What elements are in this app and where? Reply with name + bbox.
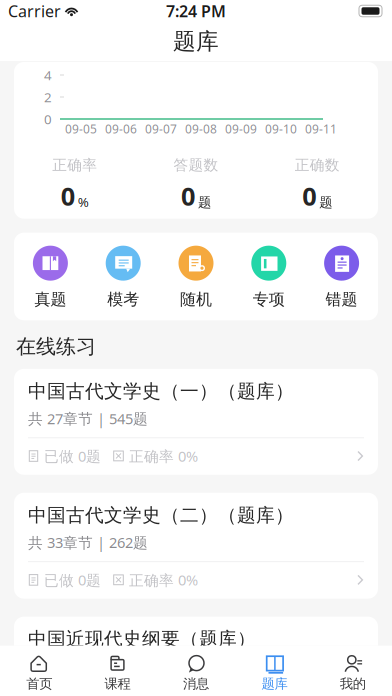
staticText: 2 <box>44 88 52 106</box>
staticText: 真题 <box>34 290 66 309</box>
staticText: 共 33章节 | 262题 <box>28 533 148 552</box>
staticText: 题库 <box>261 676 287 692</box>
staticText: 正确数 <box>295 156 340 174</box>
button[interactable]: 随机 <box>160 246 232 309</box>
button[interactable]: 错题 <box>305 246 378 309</box>
staticText: 09-11 <box>305 121 337 137</box>
staticText: 共 27章节 | 545题 <box>28 409 148 428</box>
staticText: 0 <box>181 179 195 213</box>
button[interactable]: 消息 <box>157 654 235 692</box>
button[interactable]: 真题 <box>14 246 87 309</box>
staticText: 7:24 PM <box>166 0 226 22</box>
staticText: 消息 <box>183 676 209 692</box>
button[interactable]: 我的 <box>314 654 392 692</box>
staticText: 4 <box>44 66 52 84</box>
button[interactable]: 专项 <box>232 246 305 309</box>
staticText: 中国古代文学史（二）（题库） <box>28 504 294 527</box>
staticText: 错题 <box>326 290 358 309</box>
staticText: 正确率 0% <box>129 570 198 590</box>
staticText: 0 <box>302 179 316 213</box>
staticText: 0 <box>44 110 52 128</box>
staticText: 09-09 <box>225 121 257 137</box>
staticText: Carrier <box>8 0 61 22</box>
staticText: 共 10章节 | 300题 <box>28 657 148 676</box>
staticText: 随机 <box>180 290 212 309</box>
staticText: 课程 <box>105 676 131 692</box>
staticText: 中国近现代史纲要（题库） <box>28 628 256 650</box>
staticText: 09-07 <box>145 121 177 137</box>
staticText: 已做 0题 <box>44 446 101 466</box>
staticText: 已做 0题 <box>44 570 101 590</box>
staticText: 首页 <box>26 676 52 692</box>
staticText: 中国古代文学史（一）（题库） <box>28 380 294 403</box>
staticText: 09-10 <box>265 121 297 137</box>
staticText: 题 <box>198 194 211 211</box>
staticText: 模考 <box>107 290 139 309</box>
button[interactable]: 中国古代文学史（一）（题库） <box>14 369 378 475</box>
staticText: 在线练习 <box>16 334 96 359</box>
button[interactable]: 中国近现代史纲要（题库） <box>14 617 378 696</box>
staticText: 答题数 <box>173 156 218 174</box>
staticText: 09-06 <box>105 121 137 137</box>
staticText: 0 <box>61 179 75 213</box>
staticText: 我的 <box>340 676 366 692</box>
staticText: % <box>78 193 89 211</box>
button[interactable]: 题库 <box>235 654 314 692</box>
button[interactable]: 中国古代文学史（二）（题库） <box>14 493 378 599</box>
staticText: 专项 <box>253 290 285 309</box>
staticText: 09-08 <box>185 121 217 137</box>
button[interactable]: 首页 <box>0 654 78 692</box>
staticText: 正确率 <box>52 156 97 174</box>
button[interactable]: 课程 <box>78 654 157 692</box>
staticText: 题 <box>319 194 332 211</box>
staticText: 正确率 0% <box>129 446 198 466</box>
staticText: 09-05 <box>65 121 97 137</box>
staticText: 题库 <box>173 28 219 55</box>
button[interactable]: 模考 <box>87 246 160 309</box>
